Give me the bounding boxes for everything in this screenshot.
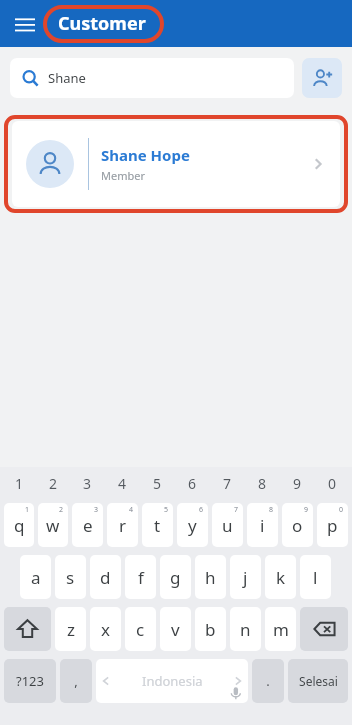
staticText: 3	[83, 474, 92, 493]
staticText: x	[101, 618, 110, 641]
staticText: Shane	[48, 69, 86, 87]
staticText: 4	[129, 505, 134, 515]
button[interactable]: g	[160, 555, 191, 599]
button[interactable]: a	[20, 555, 51, 599]
button[interactable]: 4	[105, 467, 140, 499]
staticText: 4	[118, 474, 127, 493]
staticText: 9	[304, 505, 309, 515]
staticText: s	[66, 566, 75, 589]
button[interactable]: c	[125, 607, 156, 651]
button[interactable]: k	[265, 555, 296, 599]
staticText: 2	[59, 505, 64, 515]
staticText: t	[154, 514, 161, 537]
staticText: 9	[293, 474, 302, 493]
staticText: Customer	[58, 11, 146, 36]
button[interactable]: z	[55, 607, 86, 651]
staticText: a	[31, 566, 41, 589]
button[interactable]: v	[160, 607, 191, 651]
staticText: 5	[153, 474, 162, 493]
staticText: f	[138, 566, 144, 589]
button[interactable]: m	[265, 607, 296, 651]
staticText: w	[46, 514, 60, 537]
button[interactable]: n	[230, 607, 261, 651]
button[interactable]: y	[177, 503, 208, 547]
staticText: 7	[223, 474, 232, 493]
staticText: 5	[164, 505, 169, 515]
button[interactable]: Backspace	[300, 607, 348, 651]
button[interactable]: q	[4, 503, 34, 547]
staticText: .	[266, 672, 270, 690]
staticText: n	[240, 618, 251, 641]
staticText: 1	[25, 505, 30, 515]
button[interactable]: 3	[70, 467, 105, 499]
staticText: l	[313, 566, 318, 589]
button[interactable]: d	[90, 555, 121, 599]
button[interactable]: ,	[60, 659, 92, 703]
button[interactable]: 2	[36, 467, 70, 499]
staticText: 0	[339, 505, 344, 515]
button[interactable]: Shift	[4, 607, 51, 651]
staticText: k	[276, 566, 286, 589]
staticText: Shane Hope	[101, 145, 190, 165]
button[interactable]: Menu	[10, 9, 40, 39]
button[interactable]: b	[195, 607, 226, 651]
staticText: ,	[74, 672, 78, 690]
staticText: 1	[15, 474, 24, 493]
staticText: o	[292, 514, 303, 537]
button[interactable]: 6	[175, 467, 210, 499]
button[interactable]: Selesai	[288, 659, 348, 703]
staticText: 6	[199, 505, 204, 515]
staticText: ?123	[16, 672, 44, 690]
staticText: 6	[188, 474, 197, 493]
button[interactable]: f	[125, 555, 156, 599]
button[interactable]: 9	[280, 467, 315, 499]
button[interactable]: o	[282, 503, 313, 547]
staticText: j	[243, 566, 248, 589]
button[interactable]: Add customer	[302, 58, 342, 98]
button[interactable]: ?123	[4, 659, 56, 703]
button[interactable]: r	[107, 503, 138, 547]
button[interactable]: x	[90, 607, 121, 651]
staticText: Member	[101, 168, 145, 183]
button[interactable]: 1	[2, 467, 36, 499]
staticText: 8	[269, 505, 274, 515]
staticText: u	[222, 514, 233, 537]
button[interactable]: 5	[140, 467, 175, 499]
staticText: Selesai	[299, 673, 338, 689]
button[interactable]: u	[212, 503, 243, 547]
button[interactable]: Shane	[10, 58, 294, 98]
button[interactable]: t	[142, 503, 173, 547]
staticText: h	[205, 566, 216, 589]
staticText: e	[83, 514, 93, 537]
button[interactable]: Space	[96, 659, 248, 703]
button[interactable]: i	[247, 503, 278, 547]
button[interactable]: w	[38, 503, 68, 547]
staticText: g	[170, 566, 181, 589]
button[interactable]: .	[252, 659, 284, 703]
staticText: b	[205, 618, 216, 641]
staticText: 0	[328, 474, 337, 493]
staticText: c	[136, 618, 145, 641]
staticText: 7	[234, 505, 239, 515]
staticText: m	[273, 618, 289, 641]
staticText: 3	[94, 505, 99, 515]
staticText: r	[119, 514, 127, 537]
button[interactable]: s	[55, 555, 86, 599]
button[interactable]: j	[230, 555, 261, 599]
button[interactable]: Shane Hope	[12, 121, 340, 207]
button[interactable]: e	[72, 503, 103, 547]
button[interactable]: 7	[210, 467, 245, 499]
button[interactable]: p	[317, 503, 348, 547]
staticText: d	[100, 566, 111, 589]
staticText: 2	[49, 474, 58, 493]
staticText: z	[67, 618, 75, 641]
staticText: v	[171, 618, 180, 641]
button[interactable]: 0	[315, 467, 350, 499]
button[interactable]: 8	[245, 467, 280, 499]
staticText: p	[327, 514, 338, 537]
staticText: 8	[258, 474, 267, 493]
staticText: i	[260, 514, 265, 537]
button[interactable]: l	[300, 555, 331, 599]
button[interactable]: h	[195, 555, 226, 599]
staticText: q	[14, 514, 25, 537]
